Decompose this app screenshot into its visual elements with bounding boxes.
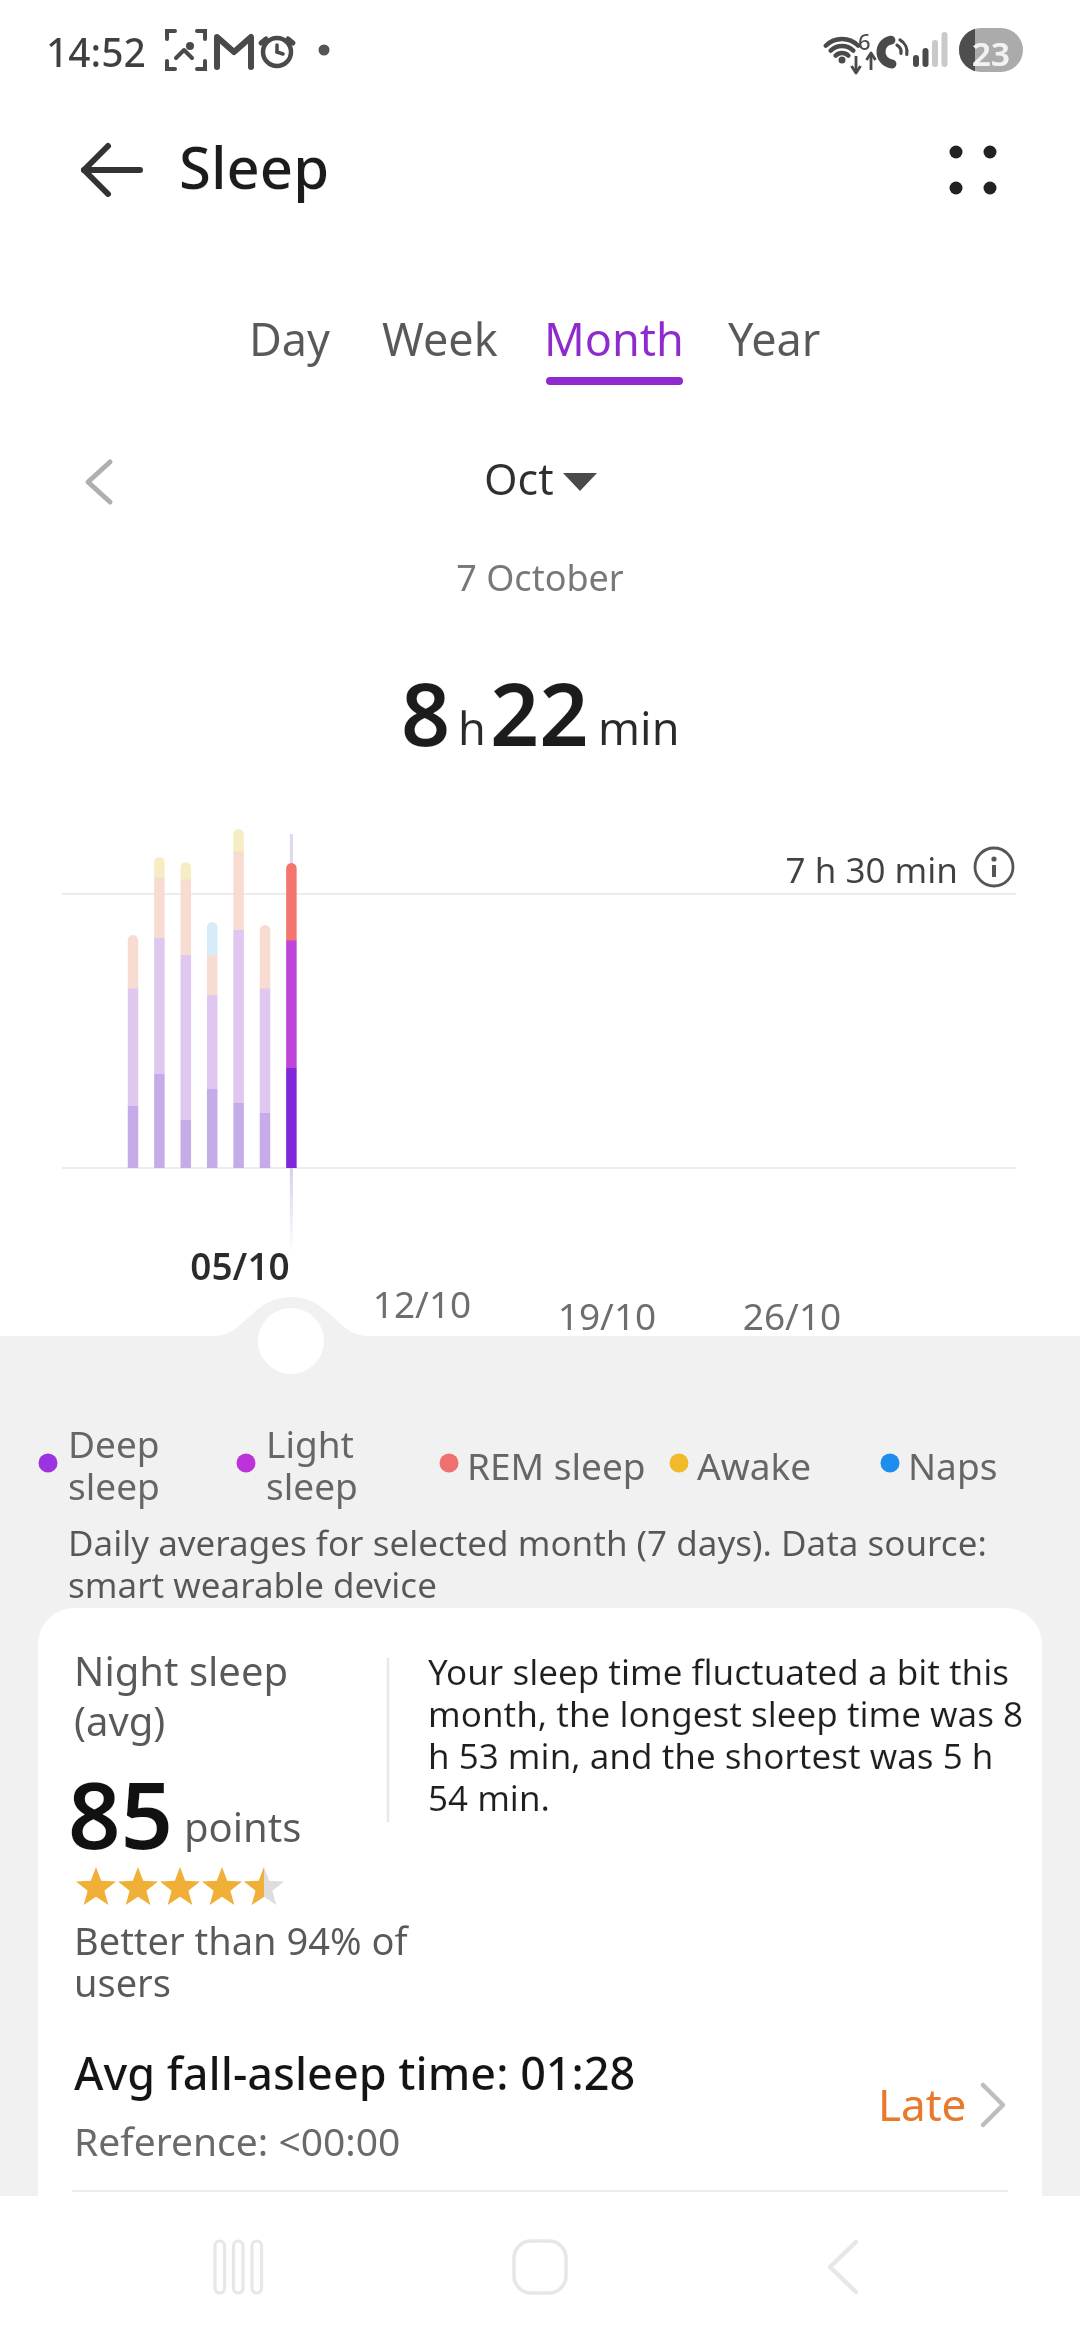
staticText: h	[458, 697, 486, 758]
staticText: Your sleep time fluctuated a bit this mo…	[428, 1648, 1024, 1821]
button[interactable]	[150, 2200, 330, 2336]
staticText: 8	[401, 654, 451, 758]
button[interactable]	[38, 2030, 1042, 2180]
staticText: Light sleep	[266, 1418, 358, 1511]
staticText: points	[184, 1799, 302, 1853]
staticText: REM sleep	[467, 1440, 646, 1490]
staticText: Month	[544, 308, 684, 369]
staticText: 26/10	[717, 1290, 867, 1340]
staticText: 14:52	[46, 25, 146, 78]
button[interactable]: Month	[540, 290, 688, 386]
staticText: Daily averages for selected month (7 day…	[68, 1519, 987, 1608]
staticText: Day	[249, 308, 331, 369]
staticText: 22	[490, 654, 589, 758]
staticText: Sleep	[179, 127, 330, 206]
button[interactable]	[450, 2200, 630, 2336]
button[interactable]	[962, 835, 1026, 899]
staticText: Awake	[697, 1440, 812, 1490]
staticText: min	[598, 697, 680, 758]
staticText: Avg fall-asleep time: 01:28	[74, 2042, 636, 2103]
staticText: Naps	[908, 1440, 998, 1490]
staticText: Deep sleep	[68, 1418, 160, 1511]
staticText: 05/10	[165, 1240, 315, 1290]
staticText: 23	[959, 31, 1023, 76]
staticText: 6	[858, 26, 871, 56]
button[interactable]	[60, 130, 160, 214]
button[interactable]: Week	[378, 290, 502, 386]
button[interactable]	[925, 120, 1025, 220]
staticText: Year	[728, 308, 821, 369]
staticText: Oct	[484, 449, 554, 508]
button[interactable]: Day	[228, 290, 352, 386]
staticText: Reference: <00:00	[74, 2114, 401, 2167]
staticText: 7 October	[0, 553, 1080, 602]
button[interactable]	[460, 440, 620, 524]
staticText: 85	[68, 1751, 174, 1876]
staticText: Week	[382, 308, 498, 369]
button[interactable]	[60, 440, 140, 524]
button[interactable]: Year	[712, 290, 836, 386]
staticText: Late	[878, 2074, 967, 2134]
staticText: 19/10	[532, 1290, 682, 1340]
staticText: 12/10	[347, 1278, 497, 1328]
staticText: 7 h 30 min	[658, 846, 958, 894]
staticText: Better than 94% of users	[74, 1914, 408, 2008]
staticText: Night sleep (avg)	[74, 1643, 289, 1748]
